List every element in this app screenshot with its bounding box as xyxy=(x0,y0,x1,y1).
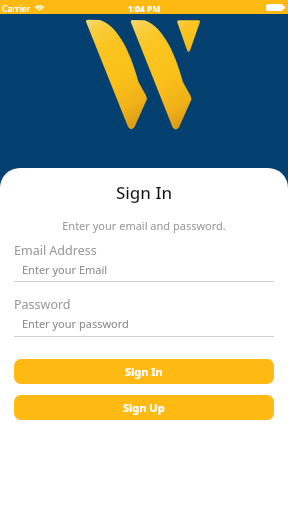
staticText: Password xyxy=(14,296,71,313)
staticText: Sign Up xyxy=(123,400,165,415)
staticText: Sign In xyxy=(125,364,163,379)
button[interactable]: Sign Up xyxy=(14,395,274,420)
staticText: Enter your Email xyxy=(22,262,108,277)
staticText: Email Address xyxy=(14,242,97,259)
staticText: Carrier xyxy=(2,3,31,15)
staticText: 1:04 PM xyxy=(0,3,288,15)
staticText: Enter your password xyxy=(22,316,129,331)
button[interactable]: Sign In xyxy=(14,359,274,384)
staticText: Enter your email and password. xyxy=(0,218,288,233)
staticText: Sign In xyxy=(0,181,288,204)
other: Wi-Fi xyxy=(34,3,45,11)
